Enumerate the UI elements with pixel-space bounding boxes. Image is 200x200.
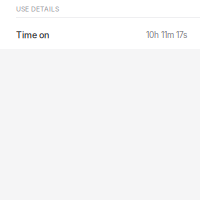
button[interactable]: Time on bbox=[0, 18, 200, 49]
staticText: USE DETAILS bbox=[16, 5, 59, 13]
staticText: 10h 11m 17s bbox=[146, 30, 187, 40]
staticText: Time on bbox=[16, 30, 49, 40]
